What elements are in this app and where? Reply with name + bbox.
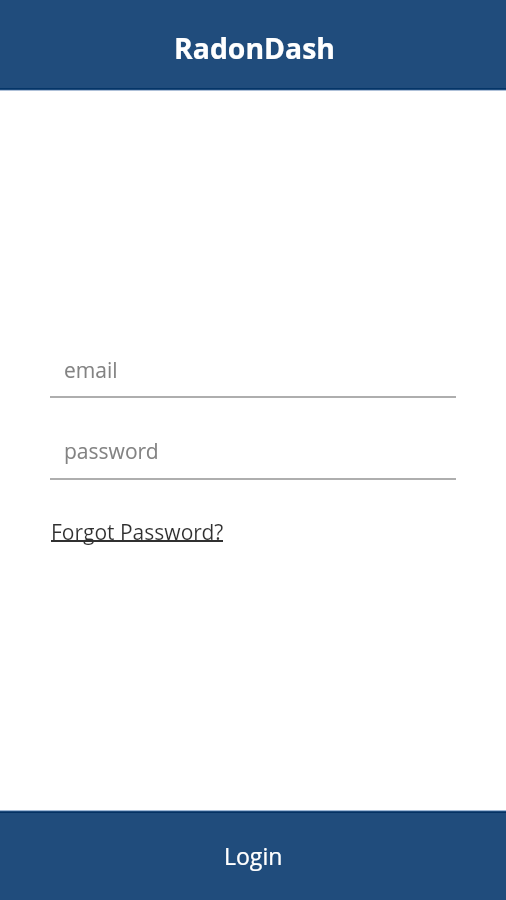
staticText: password: [64, 437, 159, 466]
button[interactable]: email: [50, 358, 456, 398]
staticText: Login: [224, 840, 283, 871]
button[interactable]: Forgot Password?: [51, 518, 224, 546]
staticText: email: [64, 356, 118, 385]
button[interactable]: Login: [0, 811, 506, 900]
button[interactable]: password: [50, 440, 456, 480]
staticText: RadonDash: [174, 29, 336, 68]
staticText: Forgot Password?: [51, 518, 224, 546]
